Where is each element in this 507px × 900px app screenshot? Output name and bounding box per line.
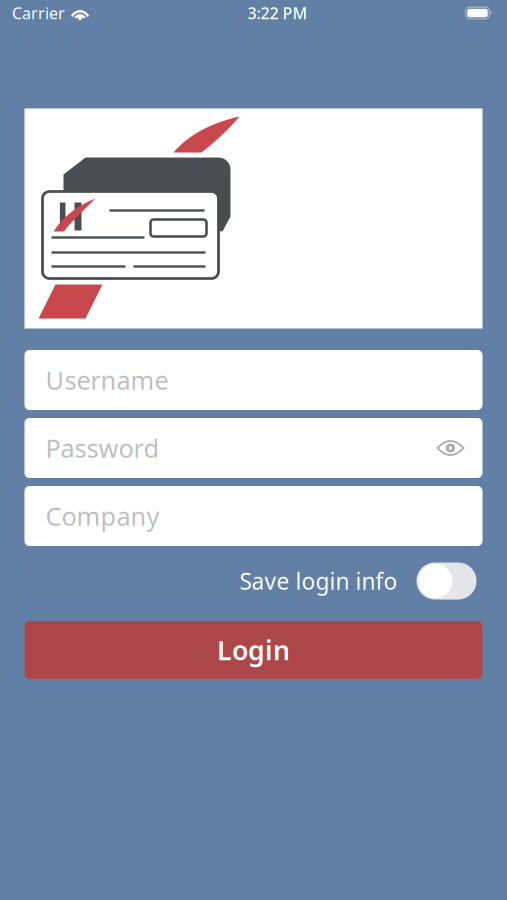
staticText: 3:22 PM [247, 2, 307, 24]
staticText: Save login info [239, 566, 397, 596]
staticText: Company [45, 499, 159, 533]
staticText: Password [45, 431, 159, 465]
button[interactable]: Show password [431, 434, 469, 462]
staticText: Username [45, 363, 168, 397]
button[interactable]: Login [24, 621, 482, 679]
staticText: Carrier [12, 2, 65, 24]
button[interactable]: Save login info [24, 562, 482, 600]
staticText: Login [217, 632, 290, 668]
